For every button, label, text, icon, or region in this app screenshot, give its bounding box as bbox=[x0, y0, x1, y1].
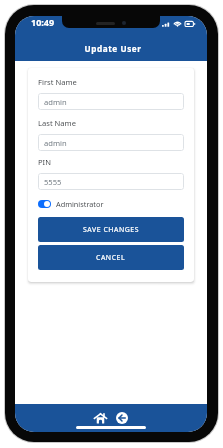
staticText: Last Name bbox=[38, 118, 77, 128]
button[interactable]: CANCEL bbox=[38, 245, 184, 270]
button[interactable]: Administrator bbox=[38, 198, 104, 210]
staticText: 10:49 bbox=[31, 16, 55, 28]
staticText: Update User bbox=[17, 43, 207, 54]
staticText: PIN bbox=[38, 157, 51, 167]
staticText: admin bbox=[44, 138, 67, 148]
button[interactable]: Back bbox=[115, 411, 129, 425]
staticText: SAVE CHANGES bbox=[83, 225, 139, 234]
staticText: Administrator bbox=[56, 199, 104, 209]
staticText: 5555 bbox=[44, 177, 62, 187]
button[interactable]: admin bbox=[38, 93, 184, 110]
staticText: First Name bbox=[38, 77, 77, 87]
staticText: CANCEL bbox=[96, 253, 126, 262]
staticText: admin bbox=[44, 97, 67, 107]
button[interactable]: admin bbox=[38, 134, 184, 151]
button[interactable]: SAVE CHANGES bbox=[38, 217, 184, 242]
button[interactable]: Home bbox=[93, 411, 107, 425]
button[interactable]: 5555 bbox=[38, 173, 184, 190]
